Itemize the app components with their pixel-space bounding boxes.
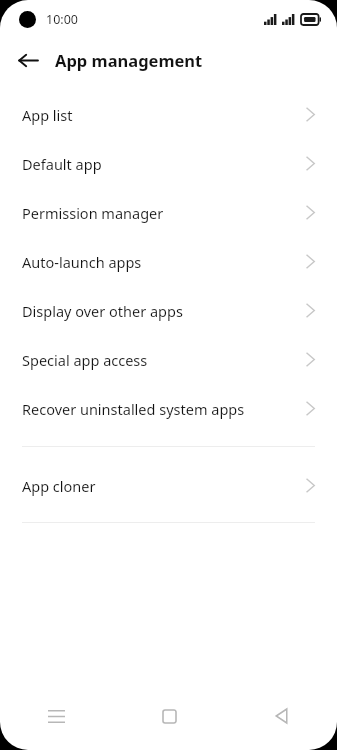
- button[interactable]: Default app: [0, 139, 337, 188]
- staticText: Default app: [22, 154, 306, 174]
- button[interactable]: Back: [12, 44, 44, 76]
- button[interactable]: Permission manager: [0, 188, 337, 237]
- button[interactable]: App cloner: [0, 461, 337, 510]
- button[interactable]: Display over other apps: [0, 286, 337, 335]
- button[interactable]: App list: [0, 90, 337, 139]
- staticText: Display over other apps: [22, 301, 306, 321]
- button[interactable]: Recent apps: [0, 692, 113, 740]
- staticText: App list: [22, 105, 306, 125]
- button[interactable]: Recover uninstalled system apps: [0, 384, 337, 433]
- button[interactable]: Back: [225, 692, 337, 740]
- staticText: 10:00: [46, 11, 78, 28]
- staticText: App management: [55, 49, 203, 71]
- button[interactable]: Auto-launch apps: [0, 237, 337, 286]
- staticText: Special app access: [22, 350, 306, 370]
- staticText: Auto-launch apps: [22, 252, 306, 272]
- staticText: Permission manager: [22, 203, 306, 223]
- button[interactable]: Special app access: [0, 335, 337, 384]
- staticText: Recover uninstalled system apps: [22, 399, 306, 419]
- staticText: App cloner: [22, 476, 306, 496]
- button[interactable]: Home: [113, 692, 225, 740]
